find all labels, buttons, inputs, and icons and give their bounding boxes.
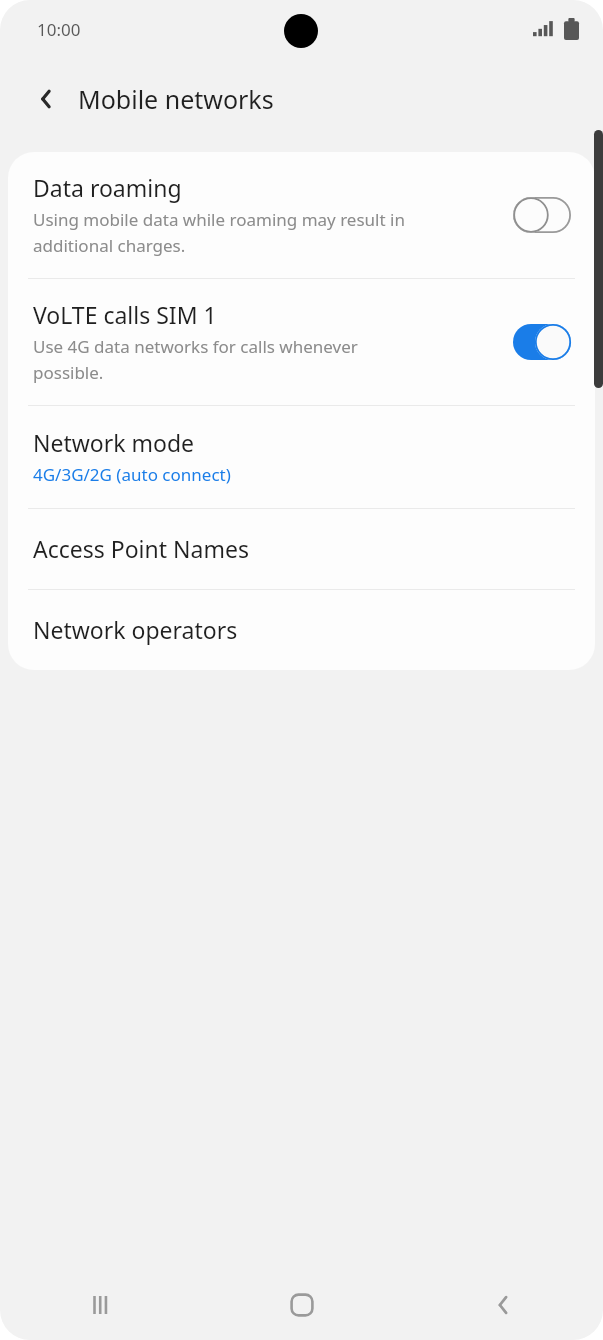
staticText: Use 4G data networks for calls whenever …: [33, 335, 358, 384]
button[interactable]: Toggle on: [511, 322, 573, 362]
button[interactable]: Network operators: [8, 590, 595, 670]
button[interactable]: Data roaming: [8, 152, 595, 278]
button[interactable]: Toggle off: [511, 195, 573, 235]
staticText: Data roaming: [33, 172, 182, 203]
staticText: Mobile networks: [78, 82, 274, 116]
button[interactable]: Back: [20, 73, 72, 125]
button[interactable]: VoLTE calls SIM 1: [8, 279, 595, 405]
staticText: 4G/3G/2G (auto connect): [33, 463, 231, 486]
staticText: 10:00: [37, 18, 81, 41]
staticText: Network operators: [33, 614, 238, 645]
button[interactable]: Recents: [0, 1270, 201, 1340]
staticText: VoLTE calls SIM 1: [33, 299, 217, 330]
button[interactable]: Network mode: [8, 406, 595, 508]
button[interactable]: Back: [402, 1270, 603, 1340]
staticText: Network mode: [33, 427, 195, 458]
staticText: Using mobile data while roaming may resu…: [33, 208, 405, 257]
button[interactable]: Home: [201, 1270, 402, 1340]
staticText: Access Point Names: [33, 533, 249, 564]
button[interactable]: Access Point Names: [8, 509, 595, 589]
